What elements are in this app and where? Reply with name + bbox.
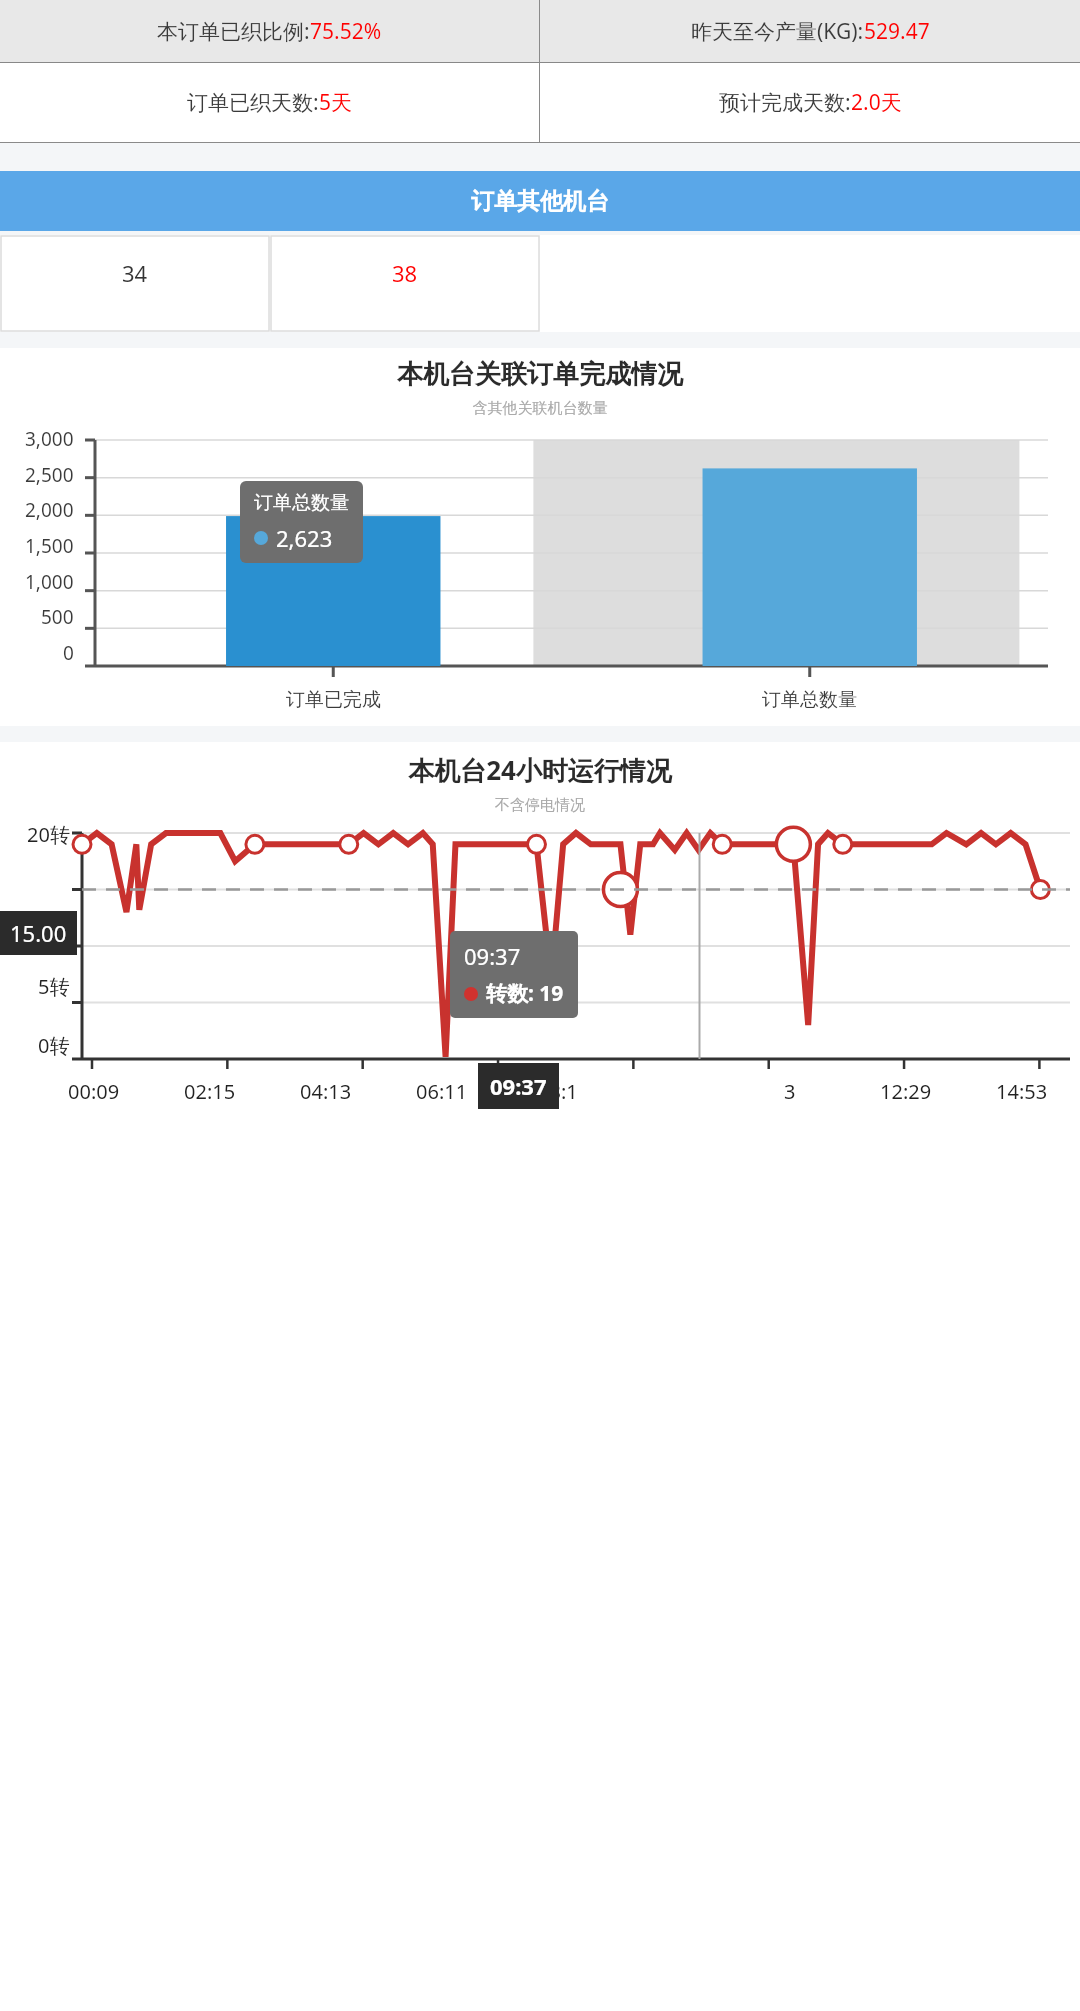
staticText: 2,500 bbox=[25, 462, 74, 488]
staticText: 1,500 bbox=[25, 533, 74, 559]
staticText: 本机台关联订单完成情况 bbox=[0, 358, 1080, 391]
staticText: 订单总数量 bbox=[254, 491, 349, 515]
button[interactable]: 本订单已织比例: bbox=[0, 0, 539, 62]
staticText: 昨天至今产量(KG): bbox=[691, 17, 864, 46]
staticText: 02:15 bbox=[184, 1078, 236, 1105]
staticText: 529.47 bbox=[864, 17, 930, 46]
staticText: 含其他关联机台数量 bbox=[0, 399, 1080, 418]
staticText: 09:37 bbox=[490, 1071, 547, 1101]
staticText: 10转 bbox=[27, 914, 70, 941]
staticText: 不含停电情况 bbox=[0, 796, 1080, 815]
staticText: 3 bbox=[784, 1078, 796, 1105]
button[interactable]: 34 bbox=[1, 236, 269, 331]
staticText: 500 bbox=[41, 604, 74, 630]
staticText: 2,623 bbox=[276, 523, 333, 553]
staticText: 本机台24小时运行情况 bbox=[0, 752, 1080, 788]
staticText: 2.0天 bbox=[851, 88, 902, 117]
staticText: 00:09 bbox=[68, 1078, 120, 1105]
staticText: 0 bbox=[63, 640, 74, 666]
button[interactable]: 昨天至今产量(KG): bbox=[540, 0, 1080, 62]
staticText: 12:29 bbox=[880, 1078, 932, 1105]
staticText: 订单已完成 bbox=[286, 688, 381, 712]
staticText: 20转 bbox=[27, 821, 70, 848]
staticText: 75.52% bbox=[310, 17, 382, 46]
button[interactable]: 38 bbox=[271, 236, 539, 331]
staticText: 转数: 19 bbox=[486, 979, 564, 1008]
staticText: 5转 bbox=[38, 973, 70, 1000]
staticText: 订单总数量 bbox=[762, 688, 857, 712]
staticText: 34 bbox=[122, 258, 148, 288]
staticText: 15.00 bbox=[10, 918, 67, 948]
staticText: 14:53 bbox=[996, 1078, 1048, 1105]
button[interactable]: 订单其他机台 bbox=[0, 171, 1080, 231]
staticText: 38 bbox=[392, 258, 418, 288]
staticText: 2,000 bbox=[25, 497, 74, 523]
staticText: 订单已织天数: bbox=[187, 88, 319, 117]
staticText: 本订单已织比例: bbox=[157, 17, 310, 46]
button[interactable]: 订单已织天数: bbox=[0, 63, 539, 142]
staticText: 3,000 bbox=[25, 426, 74, 452]
staticText: 1,000 bbox=[25, 569, 74, 595]
staticText: 预计完成天数: bbox=[719, 88, 851, 117]
staticText: 04:13 bbox=[300, 1078, 352, 1105]
staticText: 0转 bbox=[38, 1032, 70, 1059]
staticText: 5天 bbox=[319, 88, 353, 117]
staticText: 订单其他机台 bbox=[471, 187, 609, 216]
staticText: 09:37 bbox=[464, 941, 521, 971]
staticText: 08:1 bbox=[538, 1078, 578, 1105]
staticText: 06:11 bbox=[416, 1078, 468, 1105]
button[interactable]: 预计完成天数: bbox=[540, 63, 1080, 142]
